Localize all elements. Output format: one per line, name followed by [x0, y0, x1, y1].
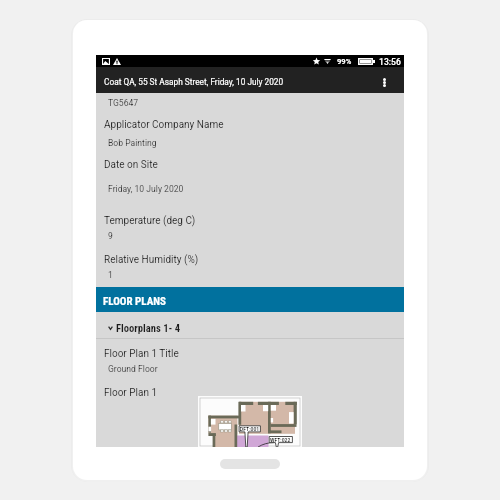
button[interactable]: Floorplans 1- 4 — [96, 312, 404, 338]
staticText: 1 — [108, 270, 113, 280]
staticText: Applicator Company Name — [104, 119, 224, 131]
staticText: Date on Site — [104, 159, 158, 171]
staticText: Coat QA, 55 St Asaph Street, Friday, 10 … — [104, 77, 370, 87]
staticText: Relative Humidity (%) — [104, 254, 199, 266]
staticText: 99% — [337, 57, 352, 66]
button[interactable]: Coat QA, 55 St Asaph Street, Friday, 10 … — [96, 67, 404, 93]
staticText: DFT:001 — [240, 426, 260, 432]
staticText: WFT:022 — [270, 437, 291, 443]
staticText: Floor Plan 1 — [104, 387, 158, 399]
staticText: Friday, 10 July 2020 — [108, 184, 184, 194]
staticText: 13:56 — [379, 57, 401, 67]
button[interactable]: More options — [370, 67, 404, 93]
staticText: Floor Plan 1 Title — [104, 348, 179, 360]
button[interactable]: FLOOR PLANS — [96, 287, 404, 312]
staticText: Ground Floor — [108, 364, 158, 374]
staticText: TG5647 — [108, 98, 139, 108]
staticText: 9 — [108, 231, 113, 241]
staticText: Bob Painting — [108, 138, 157, 148]
staticText: Temperature (deg C) — [104, 215, 196, 227]
staticText: Floorplans 1- 4 — [116, 322, 181, 334]
staticText: FLOOR PLANS — [103, 295, 166, 308]
